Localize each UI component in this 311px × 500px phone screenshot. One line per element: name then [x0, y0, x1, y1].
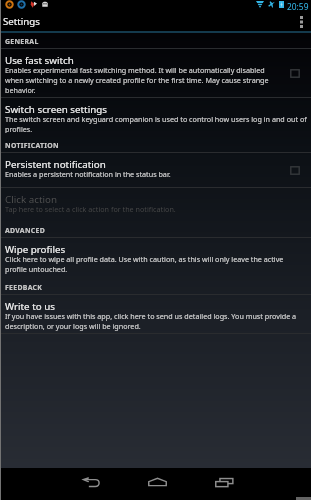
button[interactable]: Recent apps	[206, 470, 242, 494]
button[interactable]: More options	[291, 13, 311, 31]
staticText: Tap here to select a click action for th…	[5, 204, 176, 214]
staticText: Use fast switch	[5, 54, 74, 67]
staticText: Wipe profiles	[5, 243, 66, 256]
staticText: Switch screen settings	[5, 103, 107, 116]
button[interactable]: Persistent notification	[0, 153, 311, 187]
staticText: If you have issues with this app, click …	[5, 311, 307, 331]
staticText: NOTIFICATION	[5, 141, 59, 150]
staticText: Click here to wipe all profile data. Use…	[5, 254, 307, 274]
staticText: Enables experimental fast switching meth…	[5, 65, 285, 95]
button[interactable]: Write to us	[0, 295, 311, 333]
staticText: Enables a persistent notification in the…	[5, 169, 171, 179]
staticText: FEEDBACK	[5, 283, 43, 292]
button[interactable]: Switch screen settings	[0, 98, 311, 135]
button[interactable]: Back	[73, 470, 109, 494]
staticText: Write to us	[5, 300, 55, 313]
staticText: GENERAL	[5, 37, 39, 46]
staticText: 20:59	[287, 1, 309, 12]
staticText: Click action	[5, 193, 57, 206]
button[interactable]: Wipe profiles	[0, 238, 311, 279]
button[interactable]: Use fast switch	[0, 49, 311, 97]
staticText: Settings	[3, 15, 40, 28]
button[interactable]: Click action	[0, 188, 311, 222]
staticText: ADVANCED	[5, 226, 46, 235]
staticText: Persistent notification	[5, 158, 106, 171]
button[interactable]: Home	[139, 470, 175, 494]
staticText: The switch screen and keyguard companion…	[5, 114, 307, 133]
